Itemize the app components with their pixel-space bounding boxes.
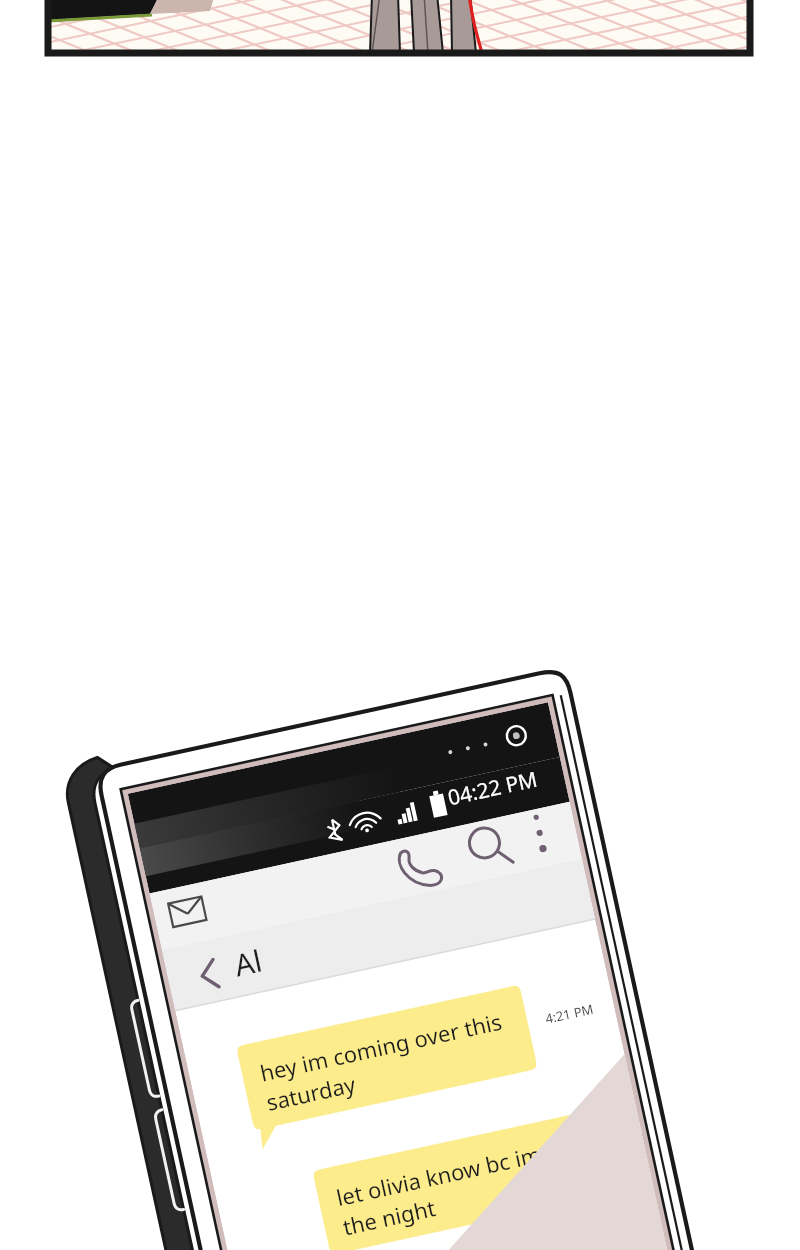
button[interactable]: Comic panel: phone messaging screen — [0, 0, 800, 1250]
